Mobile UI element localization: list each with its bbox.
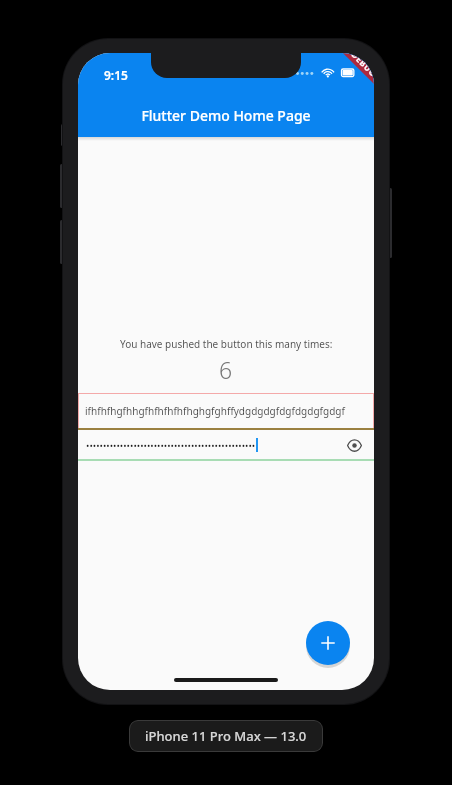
- staticText: You have pushed the button this many tim…: [120, 337, 333, 351]
- button[interactable]: iPhone 11 Pro Max — 13.0: [145, 727, 307, 745]
- staticText: Flutter Demo Home Page: [78, 106, 374, 125]
- button[interactable]: Toggle password visibility: [342, 433, 366, 457]
- staticText: 9:15: [104, 67, 128, 83]
- staticText: 6: [219, 354, 233, 385]
- staticText: ifhfhfhgfhhgfhfhfhfhfhghgfghffydgdgdgfdg…: [85, 404, 345, 418]
- staticText: iPhone 11 Pro Max — 13.0: [145, 727, 307, 745]
- button[interactable]: ••••••••••••••••••••••••••••••••••••••••…: [86, 438, 342, 452]
- button[interactable]: ifhfhfhgfhhgfhfhfhfhfhghgfghffydgdgdgfdg…: [78, 393, 374, 429]
- button[interactable]: Increment: [306, 621, 350, 665]
- staticText: ••••••••••••••••••••••••••••••••••••••••…: [86, 439, 256, 451]
- staticText: DEBUG: [349, 53, 374, 79]
